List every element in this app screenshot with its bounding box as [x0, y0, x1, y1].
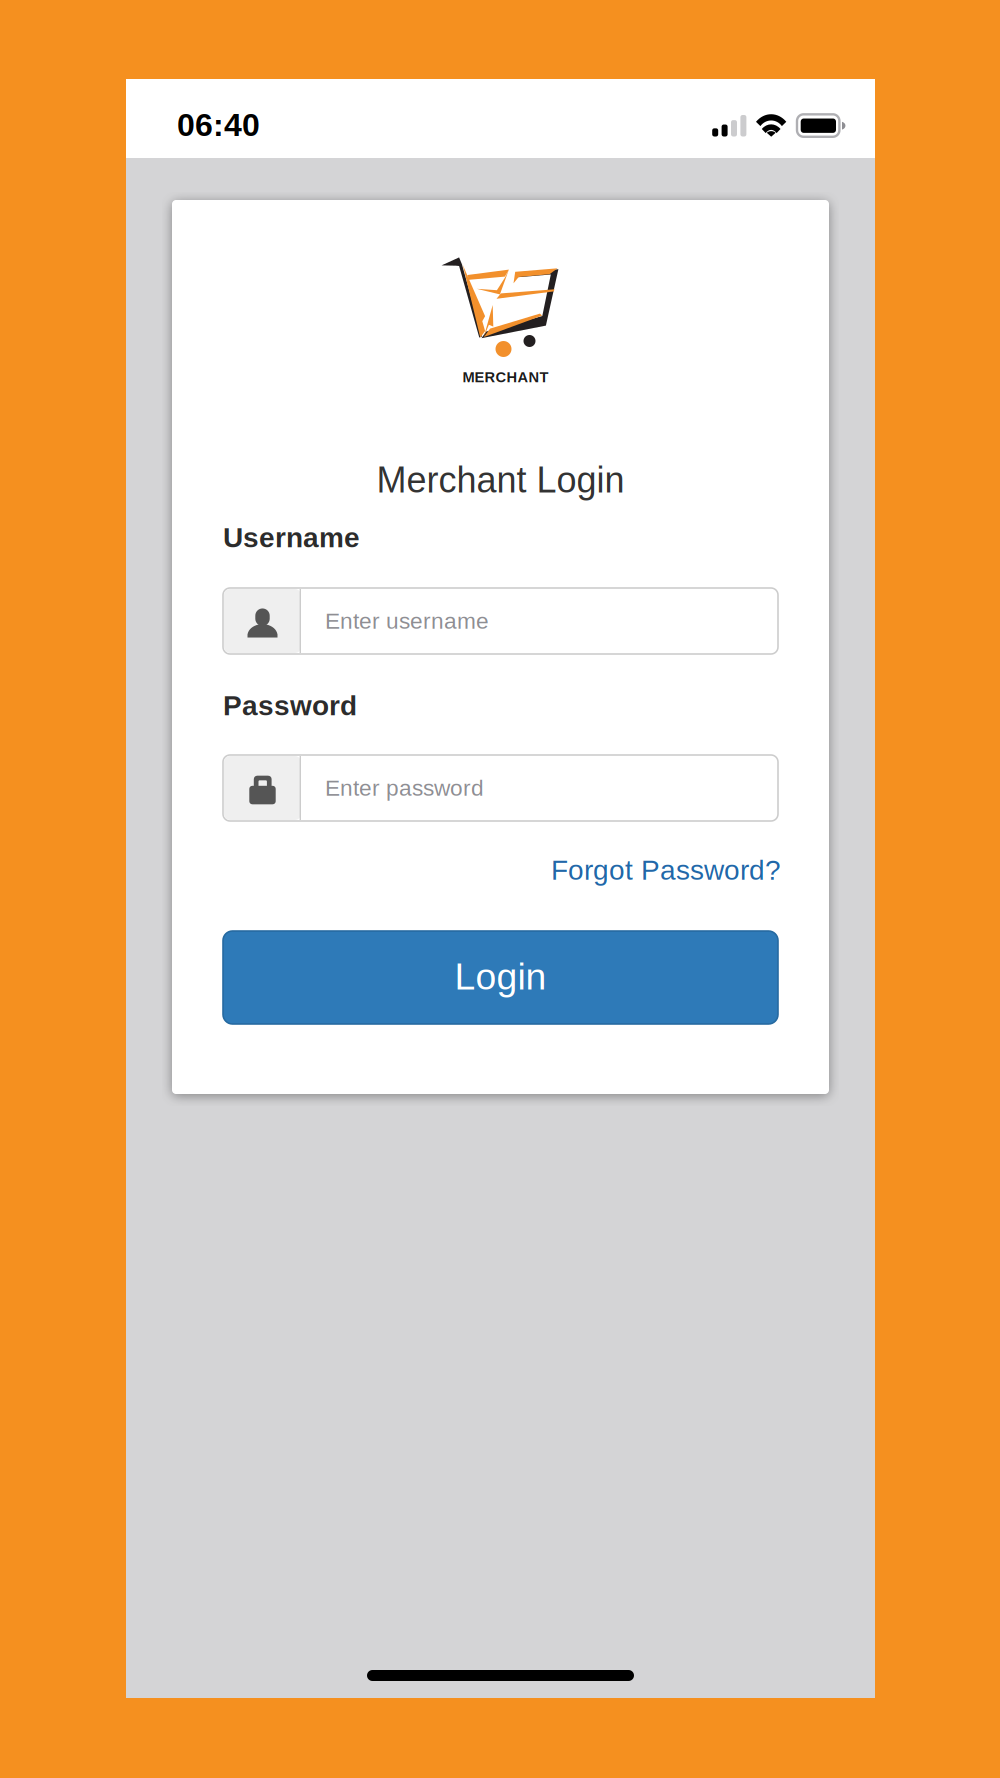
staticText: Forgot Password? [551, 854, 781, 886]
staticText: Password [223, 690, 357, 721]
button[interactable]: Enter password [223, 755, 778, 821]
staticText: Merchant Login [376, 460, 624, 500]
staticText: Enter username [325, 608, 489, 634]
button[interactable]: Enter username [223, 588, 778, 654]
button[interactable]: Forgot Password? [541, 855, 781, 885]
button[interactable]: Login [223, 931, 778, 1024]
staticText: Enter password [325, 775, 484, 801]
staticText: MERCHANT [462, 369, 548, 385]
staticText: Login [454, 956, 546, 997]
staticText: Username [223, 522, 360, 553]
staticText: 06:40 [177, 107, 260, 143]
